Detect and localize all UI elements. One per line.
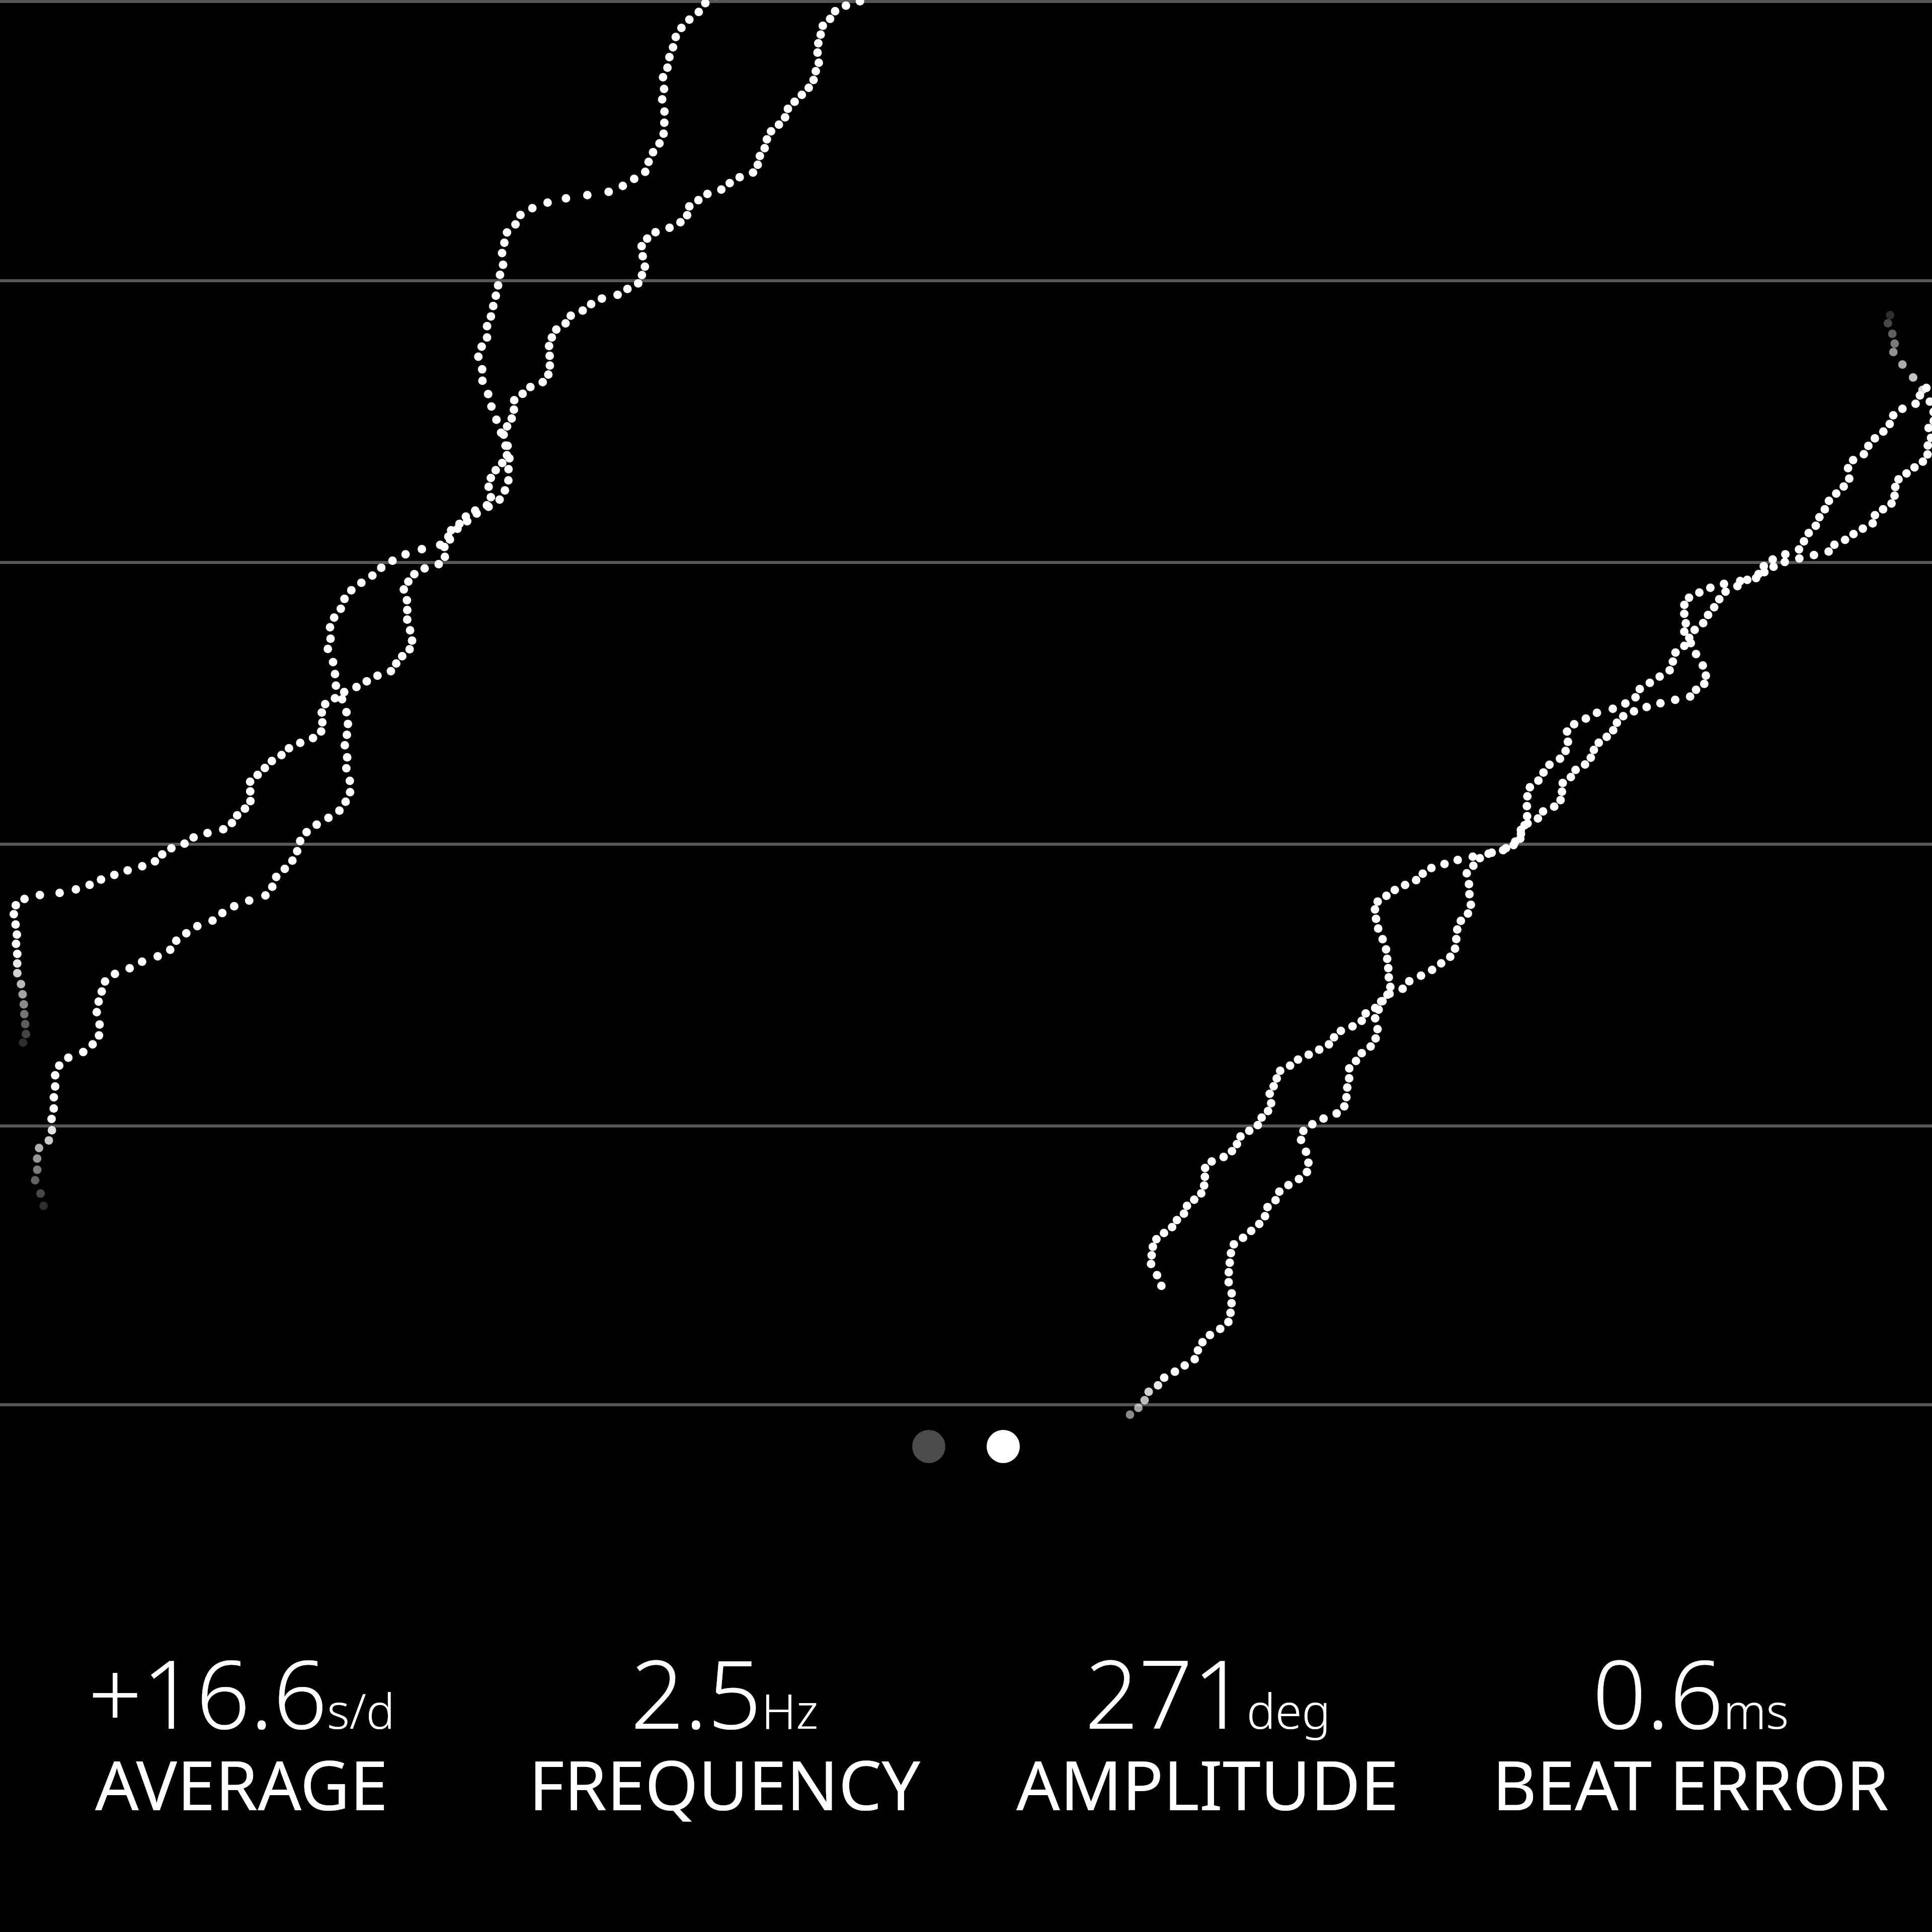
staticText: AVERAGE xyxy=(95,1737,388,1830)
button[interactable]: 271deg xyxy=(966,1628,1449,1839)
staticText: AMPLITUDE xyxy=(1016,1737,1399,1830)
staticText: FREQUENCY xyxy=(529,1737,921,1830)
staticText: 0.6ms xyxy=(1592,1628,1789,1756)
staticText: +16.6s/d xyxy=(88,1628,395,1756)
button[interactable]: Rate trace graph xyxy=(0,0,1932,1406)
button[interactable]: 2.5Hz xyxy=(483,1628,966,1839)
button[interactable]: Page 2 of 2 xyxy=(897,1419,1035,1474)
staticText: 2.5Hz xyxy=(630,1628,819,1756)
staticText: BEAT ERROR xyxy=(1492,1737,1889,1830)
staticText: 271deg xyxy=(1085,1628,1331,1756)
button[interactable]: +16.6s/d xyxy=(0,1628,483,1839)
button[interactable]: 0.6ms xyxy=(1449,1628,1932,1839)
